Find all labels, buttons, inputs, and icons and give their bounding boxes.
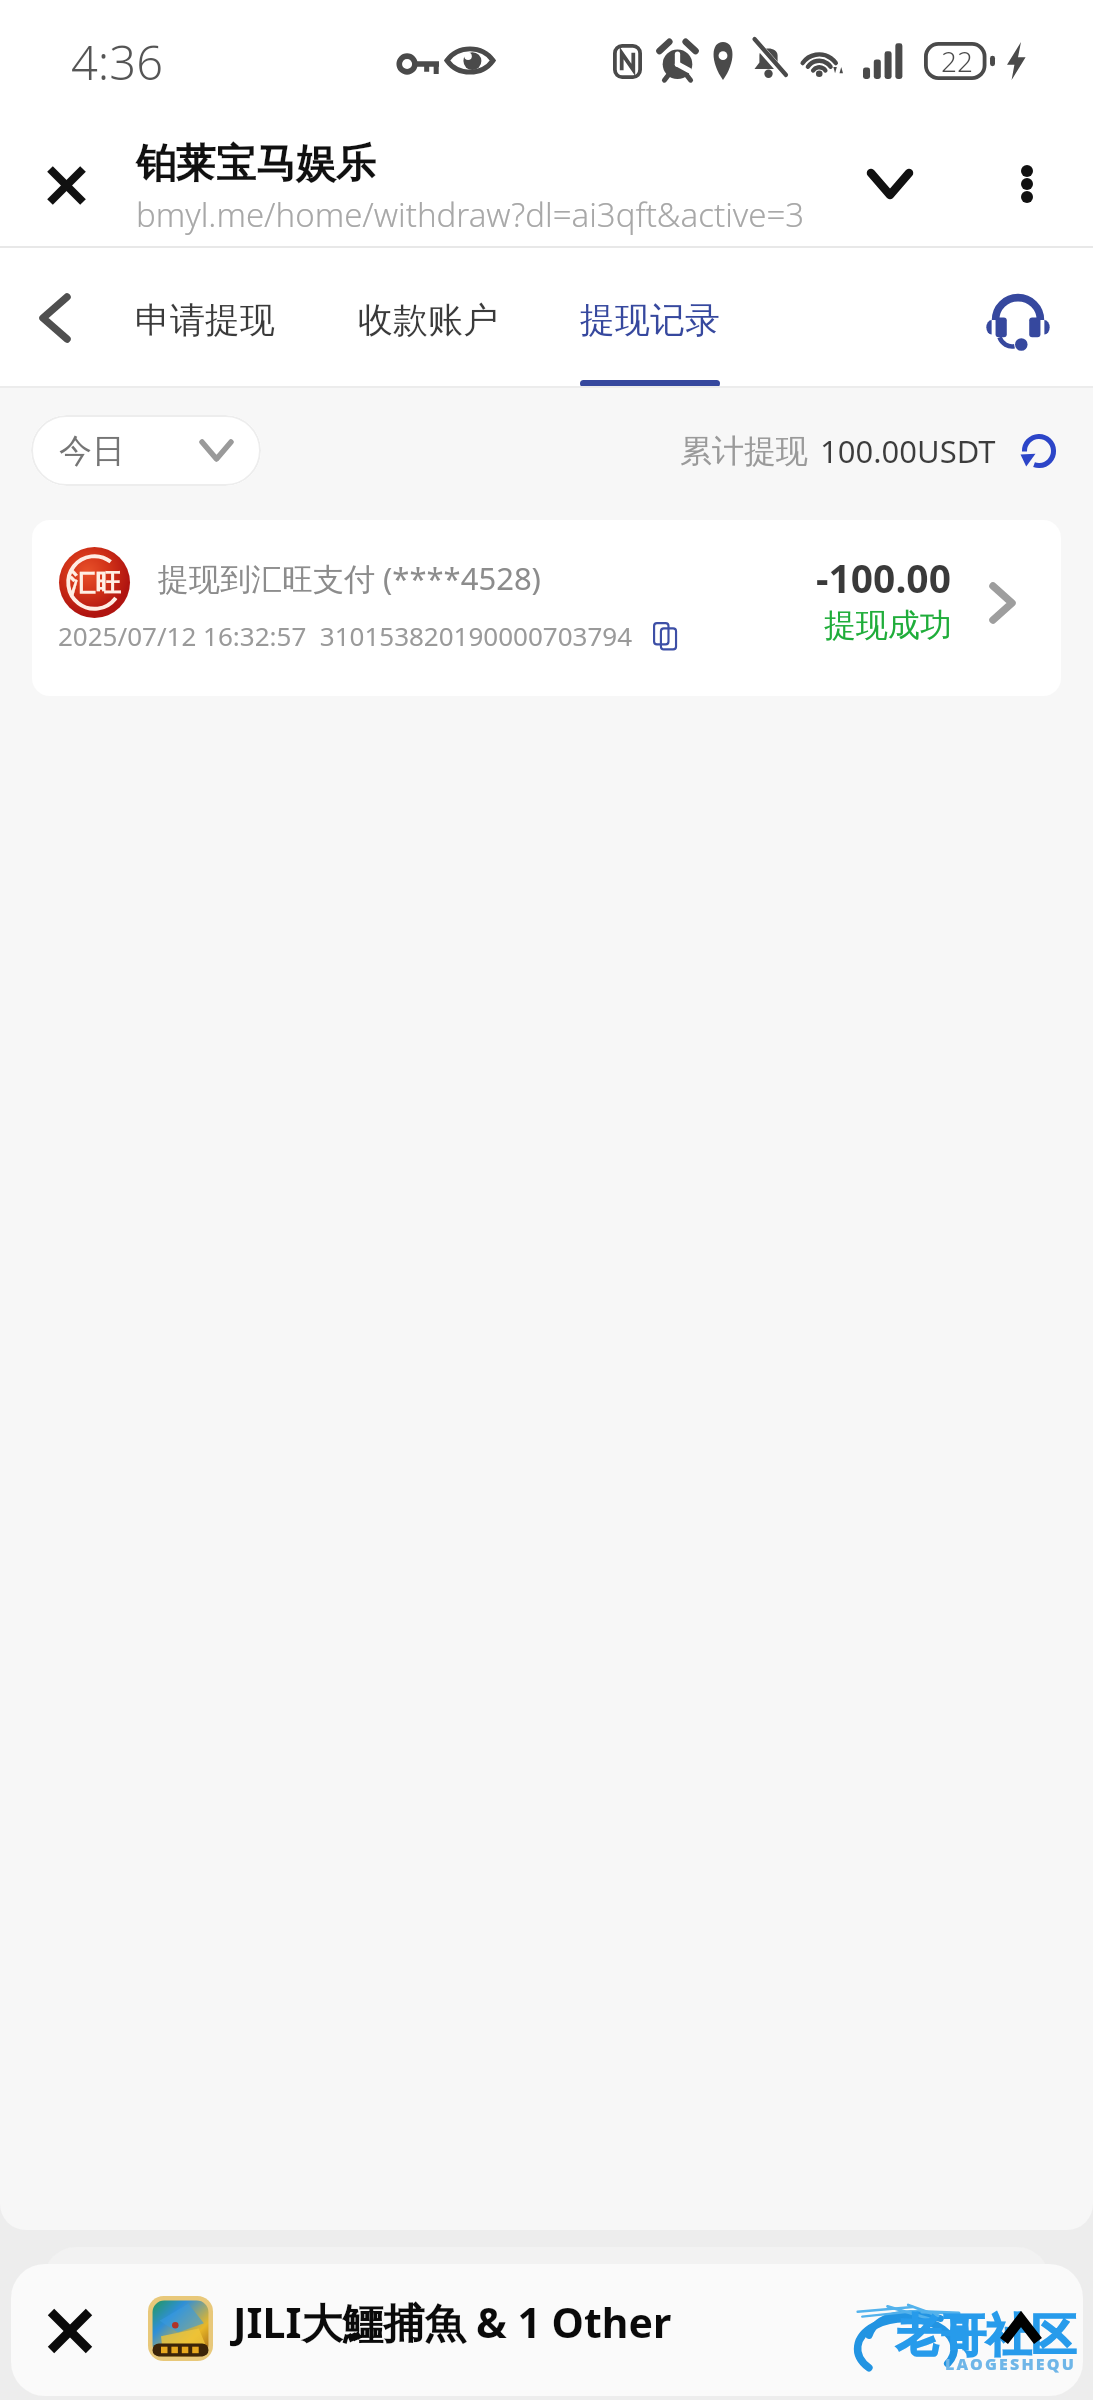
staticText: 100.00USDT [820, 430, 996, 472]
button[interactable]: 提现记录 [580, 248, 720, 388]
button[interactable]: Copy transaction id [637, 608, 693, 664]
button[interactable]: 今日 [31, 415, 261, 486]
staticText: LAOGESHEQU [945, 2353, 1077, 2375]
button[interactable]: Dismiss [11, 2264, 141, 2396]
button[interactable]: Close [0, 120, 132, 248]
button[interactable]: 汇旺 [32, 520, 1061, 696]
staticText: 铂莱宝马娱乐 [136, 138, 376, 188]
button[interactable]: Expand downloads [981, 2292, 1061, 2368]
button[interactable]: Customer support [963, 263, 1073, 373]
button[interactable]: Dismiss [11, 2264, 1083, 2396]
button[interactable]: Back [0, 248, 110, 388]
staticText: 22 [941, 42, 973, 80]
staticText: 4:36 [71, 30, 163, 94]
staticText: 累计提现 [680, 431, 808, 471]
button[interactable]: Expand [840, 120, 940, 248]
staticText: 提现记录 [580, 298, 720, 342]
staticText: 汇旺 [69, 567, 121, 600]
button[interactable]: 申请提现 [135, 248, 275, 388]
button[interactable]: More options [976, 120, 1078, 248]
staticText: JILI大鱷捕魚 & 1 Other [233, 2294, 672, 2350]
staticText: 收款账户 [358, 298, 498, 342]
button[interactable]: 收款账户 [358, 248, 498, 388]
staticText: 提现成功 [824, 605, 952, 645]
staticText: 老哥社区 [896, 2308, 1076, 2365]
button[interactable]: Refresh [1013, 425, 1065, 477]
staticText: 申请提现 [135, 298, 275, 342]
staticText: 今日 [59, 430, 125, 472]
staticText: 提现到汇旺支付 (****4528) [158, 557, 541, 599]
staticText: bmyl.me/home/withdraw?dl=ai3qft&active=3 [136, 192, 805, 237]
staticText: 2025/07/12 16:32:57 31015382019000070379… [58, 618, 633, 653]
staticText: -100.00 [816, 551, 951, 604]
